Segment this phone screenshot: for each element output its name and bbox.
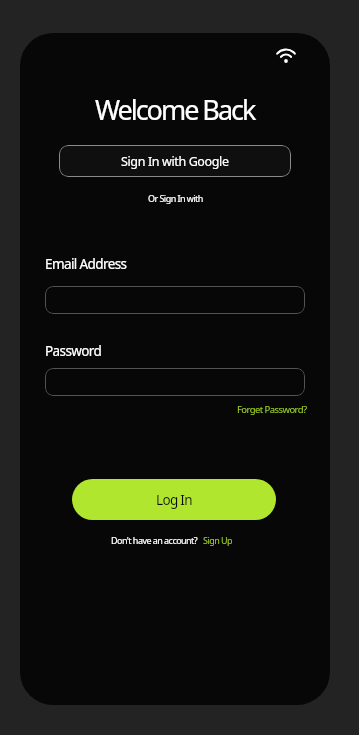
button[interactable]: [45, 286, 305, 314]
button[interactable]: Forget Password?: [207, 401, 307, 417]
staticText: Don't have an account?: [111, 534, 198, 546]
staticText: Log In: [156, 491, 192, 509]
button[interactable]: [45, 368, 305, 396]
staticText: Sign Up: [203, 534, 233, 546]
staticText: Password: [45, 342, 102, 360]
button[interactable]: Log In: [72, 479, 276, 520]
button[interactable]: Sign In with Google: [59, 145, 291, 177]
button[interactable]: Sign Up: [203, 534, 233, 546]
staticText: Sign In with Google: [121, 153, 229, 170]
staticText: Welcome Back: [95, 91, 255, 128]
staticText: Or Sign In with: [148, 192, 203, 204]
staticText: Forget Password?: [237, 403, 307, 416]
staticText: Email Address: [45, 255, 127, 273]
